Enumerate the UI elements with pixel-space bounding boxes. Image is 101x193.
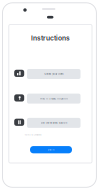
button[interactable]: Got it xyxy=(30,146,72,153)
staticText: Got it xyxy=(47,148,54,151)
staticText: *Terms & conditions xyxy=(23,134,41,136)
button[interactable]: Select your item xyxy=(14,69,80,79)
staticText: Select your item xyxy=(44,72,63,76)
staticText: Instructions xyxy=(31,34,70,42)
staticText: Get the nearest station xyxy=(41,121,67,124)
button[interactable]: Find it's exact location xyxy=(14,93,80,104)
button[interactable]: Get the nearest station xyxy=(14,118,80,128)
staticText: Find it's exact location xyxy=(40,97,67,100)
